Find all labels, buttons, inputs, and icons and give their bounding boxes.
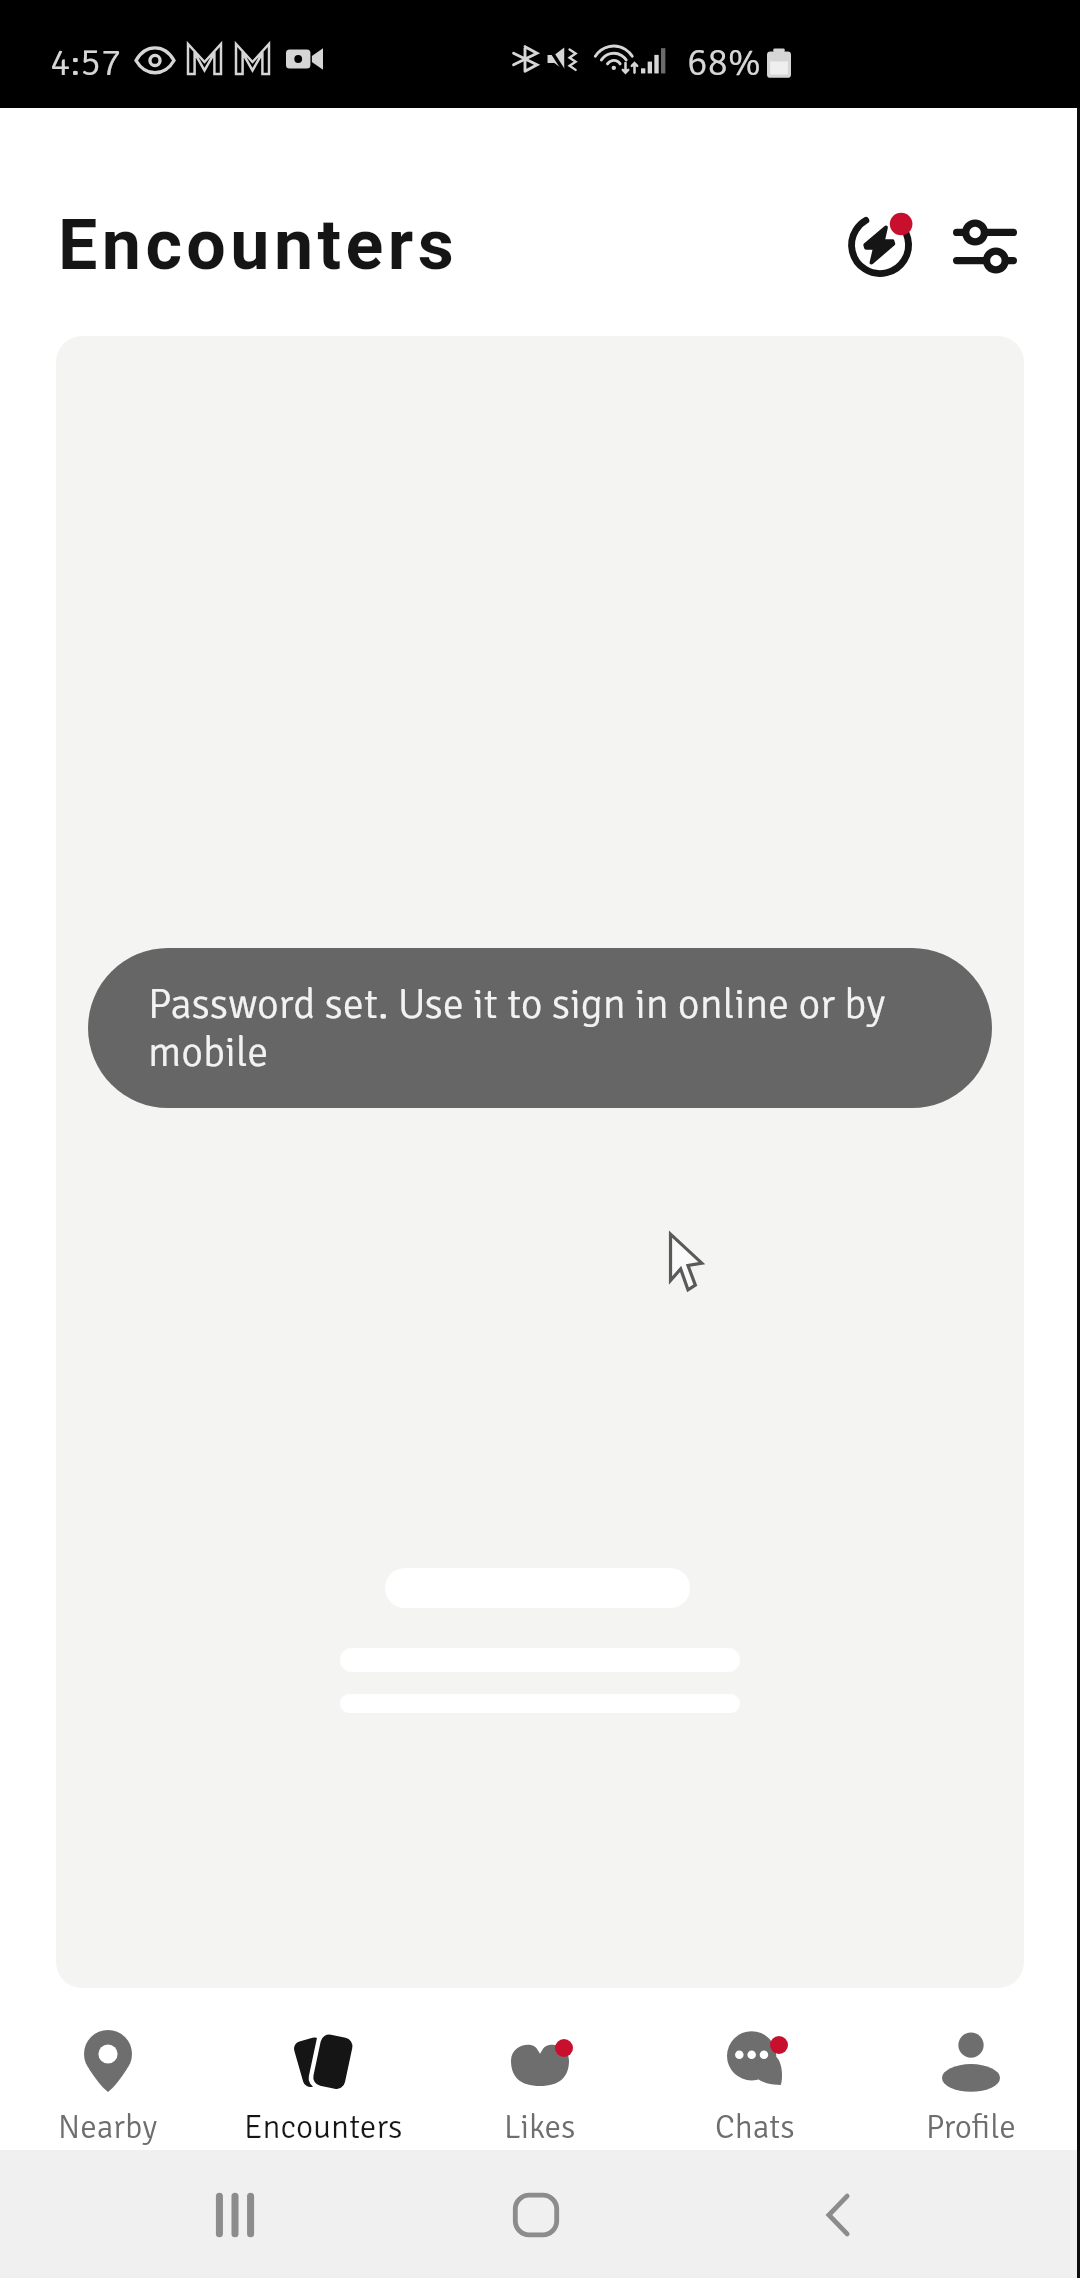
staticText: Password set. Use it to sign in online o… [148,979,936,1078]
button[interactable]: Encounters [223,1988,423,2150]
button[interactable]: Recent apps [185,2165,285,2265]
staticText: Encounters [244,2107,403,2148]
button[interactable]: Password set. Use it to sign in online o… [56,336,1024,1988]
staticText: Chats [715,2107,795,2148]
button[interactable]: Boost [828,184,922,278]
button[interactable]: Home [486,2165,586,2265]
staticText: 4:57 [50,39,122,86]
staticText: Encounters [58,204,459,286]
staticText: 68% [687,39,761,86]
staticText: Profile [926,2107,1016,2148]
button[interactable]: Nearby [8,1988,208,2150]
staticText: Likes [504,2107,576,2148]
button[interactable]: Profile [871,1988,1071,2150]
button[interactable]: Filters [938,200,1032,294]
button[interactable]: Chats [655,1988,855,2150]
button[interactable]: Likes [440,1988,640,2150]
staticText: Nearby [58,2107,158,2148]
button[interactable]: Back [788,2165,888,2265]
